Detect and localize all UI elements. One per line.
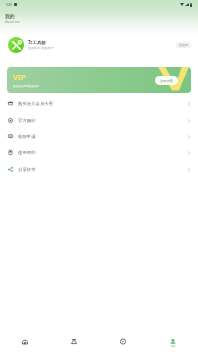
button[interactable]: VIP	[7, 67, 191, 93]
staticText: Tc工具箱	[28, 39, 46, 45]
staticText: 会员状态: 普通用户	[28, 46, 54, 50]
staticText: 官方网站	[18, 118, 36, 124]
staticText: 我的	[171, 345, 176, 348]
staticText: 使用帮助	[18, 150, 36, 156]
staticText: 立即开通	[160, 79, 173, 83]
staticText: 我的	[5, 13, 15, 19]
button[interactable]: 去登录	[176, 42, 191, 48]
button[interactable]: 官方网站	[0, 115, 198, 126]
staticText: 开通会员享受更多权益	[13, 84, 39, 87]
staticText: VIP	[13, 72, 26, 82]
button[interactable]: 立即开通	[155, 76, 178, 85]
button[interactable]: 使用帮助	[0, 147, 198, 158]
button[interactable]: 购买永久会员卡密	[0, 98, 198, 109]
staticText: 去登录	[179, 43, 188, 47]
staticText: 购买永久会员卡密	[18, 101, 54, 107]
staticText: 5:25	[6, 3, 12, 7]
staticText: 分享软件	[18, 167, 36, 173]
button[interactable]: 工具	[49, 330, 98, 352]
button[interactable]: Tc工具箱	[0, 35, 198, 54]
button[interactable]: 我的	[148, 330, 198, 352]
button[interactable]: 首页	[0, 330, 49, 352]
button[interactable]: 发现	[98, 330, 148, 352]
button[interactable]: 分享软件	[0, 164, 198, 175]
button[interactable]: 权限申请	[0, 131, 198, 142]
staticText: About me	[5, 20, 20, 24]
staticText: 权限申请	[18, 134, 36, 140]
